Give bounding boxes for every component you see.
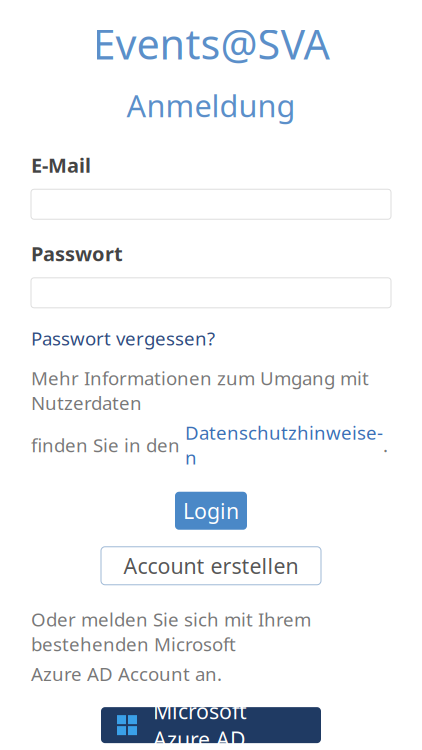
staticText: Account erstellen: [123, 552, 298, 580]
button[interactable]: Account erstellen: [101, 547, 321, 585]
button[interactable]: Microsoft Azure AD: [101, 707, 321, 743]
staticText: Azure AD Account an.: [31, 661, 222, 686]
staticText: Login: [183, 497, 239, 525]
button[interactable]: Datenschutzhinweisen: [185, 420, 383, 470]
staticText: Datenschutzhinweisen: [185, 420, 383, 470]
staticText: Events@SVA: [92, 16, 329, 71]
staticText: Microsoft Azure AD: [153, 697, 247, 750]
staticText: .: [383, 433, 388, 457]
staticText: Mehr Informationen zum Umgang mit Nutzer…: [31, 366, 369, 415]
staticText: Passwort: [31, 240, 123, 267]
staticText: finden Sie in den: [31, 433, 185, 457]
staticText: Anmeldung: [126, 85, 295, 126]
staticText: Passwort vergessen?: [31, 326, 215, 351]
staticText: E-Mail: [31, 152, 91, 178]
button[interactable]: Passwort vergessen?: [31, 324, 215, 353]
button[interactable]: Login: [175, 492, 247, 530]
staticText: Oder melden Sie sich mit Ihrem bestehend…: [31, 607, 311, 656]
